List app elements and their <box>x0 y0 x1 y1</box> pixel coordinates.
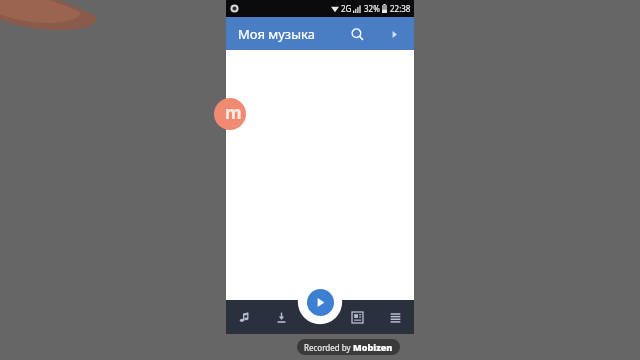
staticText: Моя музыка <box>238 25 315 43</box>
staticText: Mobizen <box>353 341 393 353</box>
button[interactable]: More options <box>382 22 406 46</box>
button[interactable]: Music <box>226 300 263 334</box>
staticText: 22:38 <box>390 3 411 14</box>
button[interactable]: Play <box>307 289 334 316</box>
staticText: 2G <box>341 3 352 14</box>
staticText: 32% <box>364 3 380 14</box>
button[interactable]: Search <box>342 19 372 49</box>
button[interactable]: Menu <box>376 300 414 334</box>
staticText: m <box>225 101 242 124</box>
button[interactable]: Mail.ru music logo <box>214 98 246 130</box>
button[interactable]: Downloads <box>263 300 300 334</box>
button[interactable]: Playlists <box>338 300 376 334</box>
staticText: Recorded by <box>304 342 353 353</box>
